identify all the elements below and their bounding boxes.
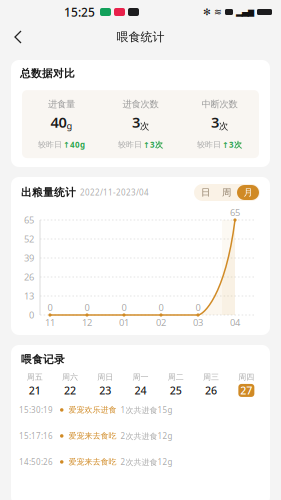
staticText: 周一: [132, 372, 148, 382]
staticText: 周二: [168, 372, 184, 382]
button[interactable]: 周四: [229, 372, 264, 397]
staticText: ↑40g: [63, 139, 85, 150]
staticText: 次: [140, 120, 149, 132]
staticText: 2022/11-2023/04: [80, 187, 149, 198]
staticText: 3: [132, 112, 140, 132]
staticText: ↑3次: [143, 139, 163, 150]
staticText: g: [66, 119, 72, 132]
button[interactable]: 周五: [17, 372, 52, 397]
staticText: 周三: [203, 372, 219, 382]
button[interactable]: 月: [237, 185, 259, 200]
staticText: 较昨日: [118, 140, 142, 149]
staticText: 0: [47, 301, 52, 314]
staticText: 1次共进食15g: [116, 405, 172, 415]
staticText: 65: [230, 206, 240, 219]
staticText: 2次共进食12g: [116, 431, 172, 441]
button[interactable]: 周三: [193, 372, 229, 397]
staticText: 0: [84, 301, 89, 314]
staticText: 进食次数: [122, 98, 158, 110]
staticText: 65: [24, 214, 34, 226]
staticText: 39: [24, 252, 34, 264]
staticText: 爱宠来去食吃: [68, 457, 116, 467]
staticText: 0: [158, 301, 163, 314]
staticText: 次: [219, 120, 228, 132]
staticText: 喂食统计: [116, 30, 164, 44]
staticText: 52: [24, 233, 34, 245]
staticText: ≋: [214, 7, 222, 17]
button[interactable]: 周二: [158, 372, 193, 397]
staticText: 21: [29, 383, 41, 397]
staticText: 爱宠来去食吃: [68, 431, 116, 441]
staticText: 0: [121, 301, 126, 314]
staticText: 03: [193, 316, 203, 329]
staticText: 24: [134, 383, 146, 397]
staticText: 3: [211, 112, 219, 132]
staticText: 中断次数: [201, 98, 237, 110]
staticText: 出粮量统计: [21, 186, 76, 199]
staticText: 22: [64, 383, 76, 397]
staticText: 15:17:16: [19, 431, 53, 441]
staticText: 26: [205, 383, 217, 397]
staticText: 周: [222, 187, 231, 198]
button[interactable]: 周日: [88, 372, 123, 397]
staticText: 周四: [238, 372, 254, 382]
staticText: 02: [156, 316, 166, 329]
staticText: 周日: [97, 372, 113, 382]
staticText: 14:50:26: [19, 457, 53, 467]
staticText: 15:25: [64, 4, 95, 20]
staticText: 04: [230, 316, 240, 329]
button[interactable]: 周六: [52, 372, 88, 397]
staticText: 40: [50, 112, 66, 132]
staticText: 11: [45, 316, 55, 329]
staticText: 12: [82, 316, 92, 329]
staticText: 15:30:19: [19, 405, 53, 415]
button[interactable]: 周: [216, 185, 237, 200]
staticText: 13: [24, 290, 34, 302]
staticText: 日: [201, 187, 210, 198]
staticText: 进食量: [48, 98, 75, 110]
staticText: 25: [170, 383, 182, 397]
button[interactable]: 日: [195, 185, 216, 200]
button[interactable]: 周一: [123, 372, 158, 397]
staticText: 较昨日: [38, 140, 62, 149]
staticText: 较昨日: [197, 140, 221, 149]
staticText: 喂食记录: [21, 353, 65, 366]
button[interactable]: Back: [10, 26, 32, 48]
staticText: 爱宠欢乐进食: [68, 405, 116, 415]
staticText: ▂▄▆: [236, 7, 254, 17]
staticText: 01: [119, 316, 129, 329]
staticText: ✻: [203, 7, 211, 17]
staticText: 周五: [27, 372, 43, 382]
staticText: 总数据对比: [20, 67, 75, 80]
staticText: 周六: [62, 372, 78, 382]
staticText: 月: [243, 187, 252, 198]
staticText: ↑3次: [222, 139, 242, 150]
staticText: 0: [195, 301, 200, 314]
staticText: 0: [29, 309, 34, 321]
staticText: 2次共进食12g: [116, 457, 172, 467]
staticText: 26: [24, 271, 34, 283]
staticText: 27: [240, 383, 252, 397]
staticText: 23: [99, 383, 111, 397]
